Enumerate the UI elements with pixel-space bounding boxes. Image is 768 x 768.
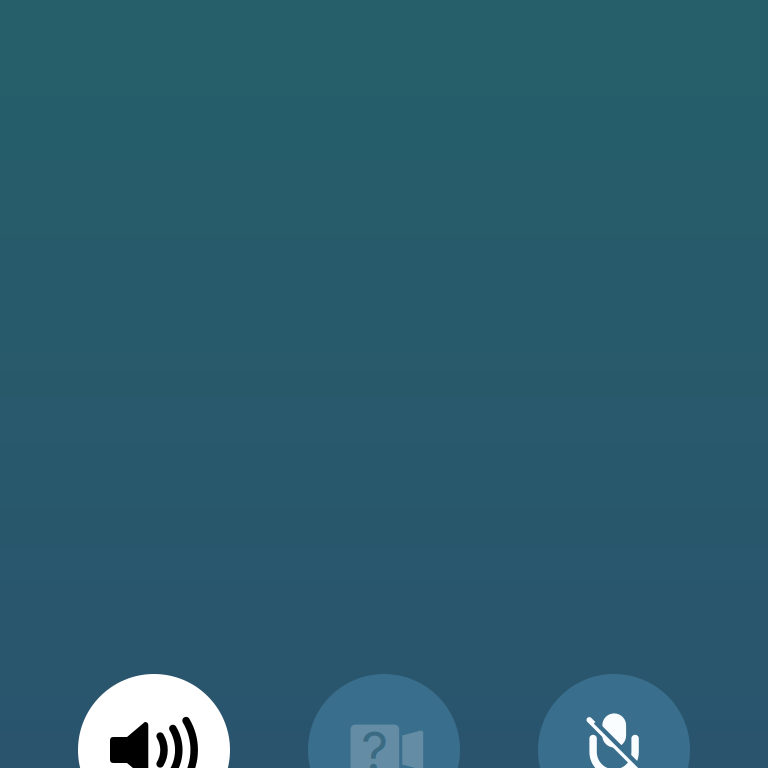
button[interactable]: Turn camera off	[308, 674, 460, 768]
button[interactable]: Speaker	[78, 674, 230, 768]
staticText: ?	[361, 719, 388, 768]
button[interactable]: Unmute	[538, 674, 690, 768]
